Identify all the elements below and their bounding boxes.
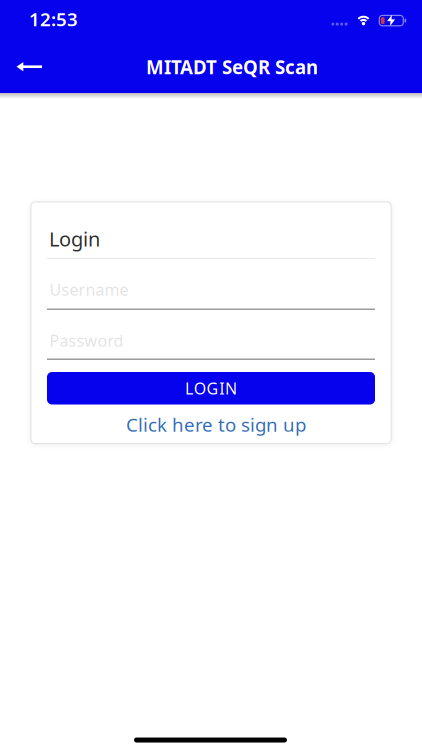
staticText: Click here to sign up [126, 412, 306, 437]
staticText: Login [49, 225, 100, 252]
staticText: LOGIN [185, 378, 237, 399]
staticText: Password [49, 330, 123, 351]
staticText: 12:53 [29, 6, 78, 31]
staticText: MITADT SeQR Scan [146, 54, 318, 79]
staticText: Username [49, 279, 128, 300]
